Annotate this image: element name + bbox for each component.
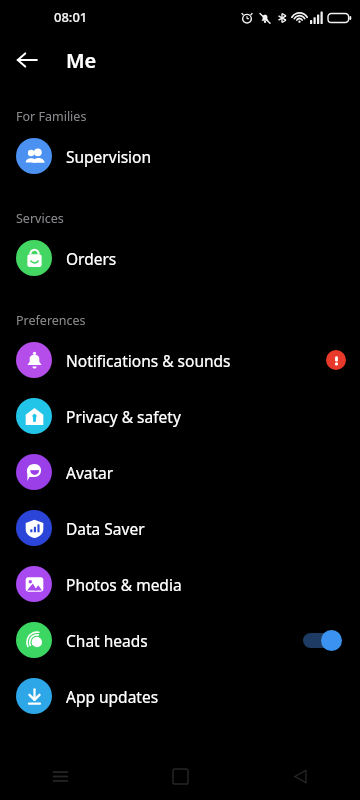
staticText: Photos & media	[66, 574, 346, 595]
staticText: App updates	[66, 686, 346, 707]
staticText: Me	[66, 47, 97, 74]
button[interactable]: Recent apps	[0, 752, 120, 800]
staticText: Orders	[66, 248, 346, 269]
button[interactable]: Back	[6, 39, 48, 81]
button[interactable]: Chat heads toggle	[300, 625, 346, 655]
button[interactable]: App updates	[0, 668, 360, 724]
staticText: Services	[16, 210, 64, 227]
button[interactable]: Avatar	[0, 444, 360, 500]
button[interactable]: Data Saver	[0, 500, 360, 556]
staticText: Notifications & sounds	[66, 350, 326, 371]
button[interactable]: Notifications & sounds	[0, 332, 360, 388]
button[interactable]: Privacy & safety	[0, 388, 360, 444]
staticText: For Families	[16, 108, 87, 125]
button[interactable]: Alert	[326, 350, 346, 370]
button[interactable]: Supervision	[0, 128, 360, 184]
button[interactable]: Home	[120, 752, 240, 800]
staticText: Preferences	[16, 312, 86, 329]
staticText: Data Saver	[66, 518, 346, 539]
staticText: Avatar	[66, 462, 346, 483]
staticText: 08:01	[54, 8, 88, 26]
button[interactable]: Photos & media	[0, 556, 360, 612]
button[interactable]: Chat heads	[0, 612, 360, 668]
staticText: Privacy & safety	[66, 406, 346, 427]
staticText: Chat heads	[66, 630, 300, 651]
button[interactable]: Orders	[0, 230, 360, 286]
staticText: Supervision	[66, 146, 346, 167]
